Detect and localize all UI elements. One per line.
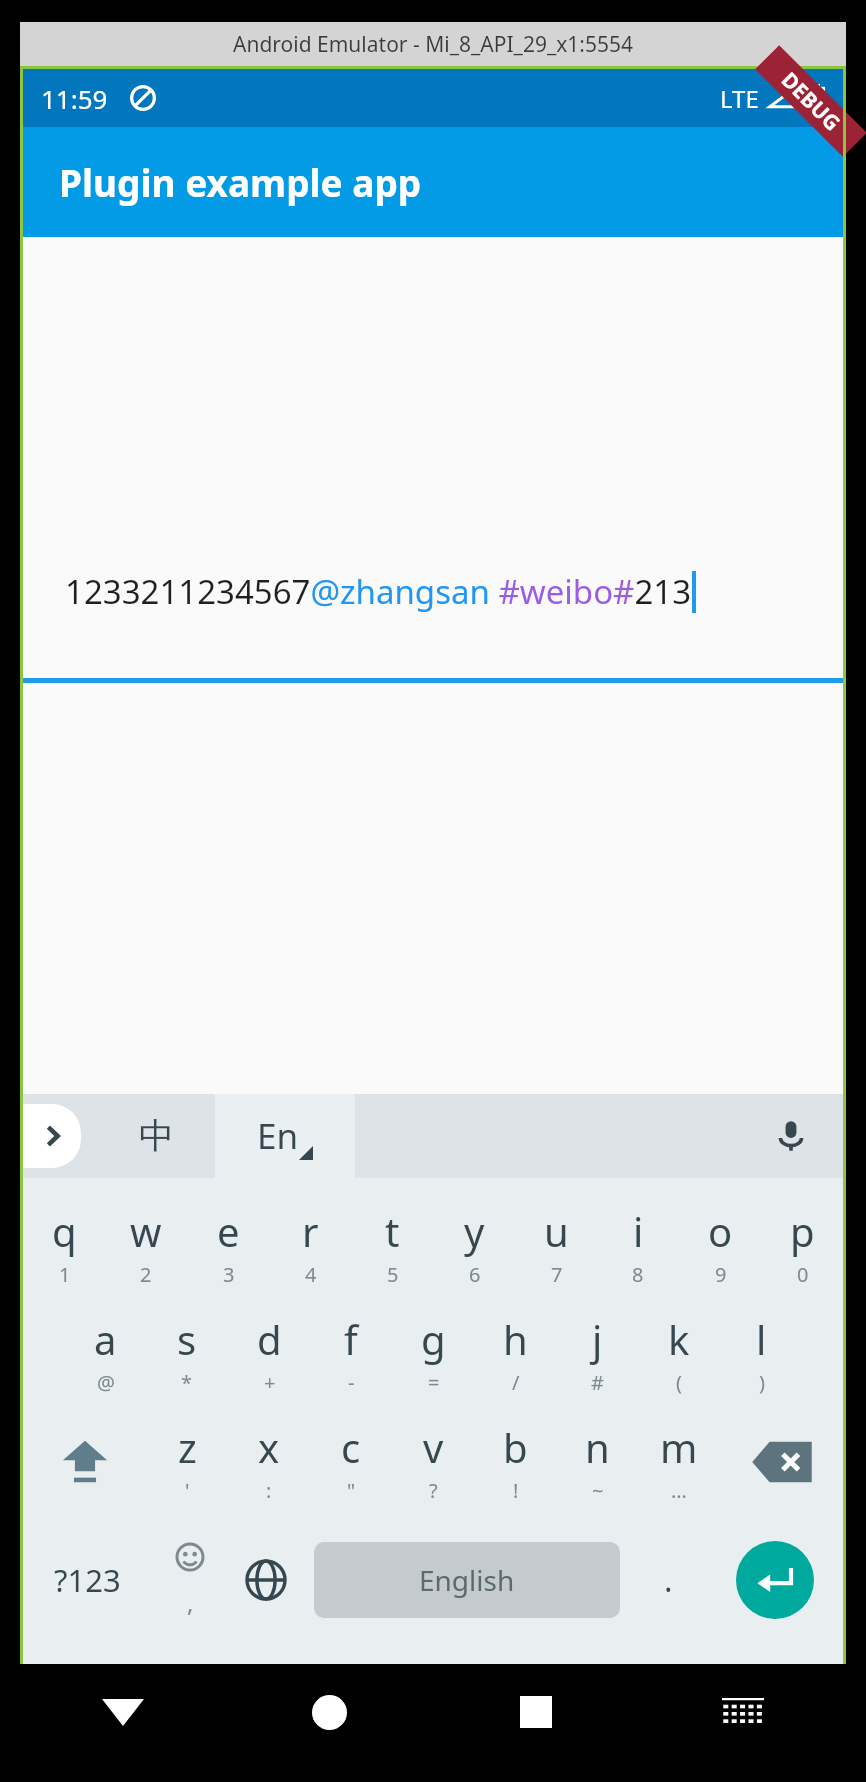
staticText: t — [385, 1204, 400, 1258]
button[interactable]: Recent apps — [432, 1664, 639, 1760]
staticText: … — [671, 1477, 687, 1504]
staticText: c — [341, 1420, 361, 1474]
staticText: o — [708, 1204, 733, 1258]
staticText: k — [668, 1312, 690, 1366]
button[interactable]: Home — [226, 1664, 432, 1760]
button[interactable]: o — [679, 1192, 761, 1300]
staticText: p — [790, 1204, 815, 1258]
staticText: 中 — [139, 1114, 174, 1158]
button[interactable]: Voice input — [739, 1094, 843, 1178]
staticText: 0 — [797, 1261, 809, 1288]
staticText: ?123 — [54, 1559, 121, 1601]
staticText: s — [177, 1312, 197, 1366]
staticText: n — [585, 1420, 610, 1474]
button[interactable]: Backspace — [720, 1408, 843, 1516]
button[interactable]: m — [638, 1408, 720, 1516]
staticText: e — [217, 1204, 240, 1258]
staticText: w — [130, 1204, 162, 1258]
button[interactable]: Enter — [706, 1516, 843, 1644]
button[interactable]: l — [720, 1300, 802, 1408]
staticText: ~ — [592, 1477, 604, 1504]
staticText: ) — [759, 1369, 765, 1396]
button[interactable]: Expand toolbar — [23, 1094, 97, 1178]
staticText: h — [503, 1312, 528, 1366]
staticText: = — [428, 1369, 440, 1396]
staticText: 2 — [140, 1261, 152, 1288]
staticText: 6 — [469, 1261, 481, 1288]
staticText: d — [257, 1312, 282, 1366]
button[interactable]: 1233211234567@zhangsan #weibo#213 — [65, 569, 843, 614]
button[interactable]: y — [433, 1192, 515, 1300]
button[interactable]: x — [228, 1408, 310, 1516]
button[interactable]: a — [64, 1300, 146, 1408]
button[interactable]: Change language — [228, 1516, 304, 1644]
staticText: 1233211234567@zhangsan #weibo#213 — [65, 569, 692, 614]
staticText: Plugin example app — [59, 157, 422, 207]
staticText: ( — [676, 1369, 682, 1396]
staticText: DEBUG — [775, 66, 847, 138]
button[interactable]: v — [392, 1408, 474, 1516]
staticText: / — [512, 1369, 520, 1396]
staticText: @ — [97, 1369, 115, 1396]
staticText: 8 — [632, 1261, 644, 1288]
staticText: , — [187, 1586, 194, 1619]
button[interactable]: En — [215, 1094, 355, 1178]
staticText: 7 — [551, 1261, 563, 1288]
staticText: : — [266, 1477, 272, 1504]
staticText: Android Emulator - Mi_8_API_29_x1:5554 — [233, 30, 634, 59]
staticText: q — [52, 1204, 77, 1258]
staticText: + — [264, 1369, 276, 1396]
staticText: l — [756, 1312, 767, 1366]
staticText: u — [544, 1204, 569, 1258]
staticText: ? — [429, 1477, 438, 1504]
button[interactable]: c — [310, 1408, 392, 1516]
staticText: 11:59 — [41, 81, 108, 116]
button[interactable]: u — [515, 1192, 597, 1300]
button[interactable]: Emoji — [152, 1516, 228, 1644]
staticText: 3 — [223, 1261, 235, 1288]
button[interactable]: k — [638, 1300, 720, 1408]
button[interactable]: f — [310, 1300, 392, 1408]
button[interactable]: h — [474, 1300, 556, 1408]
staticText: 4 — [305, 1261, 317, 1288]
button[interactable]: z — [146, 1408, 228, 1516]
button[interactable]: w — [105, 1192, 187, 1300]
button[interactable]: Chinese input — [97, 1094, 215, 1178]
staticText: En — [257, 1112, 299, 1160]
staticText: LTE — [720, 82, 759, 115]
button[interactable]: i — [597, 1192, 679, 1300]
button[interactable]: t — [351, 1192, 433, 1300]
staticText: English — [419, 1561, 515, 1599]
staticText: b — [503, 1420, 528, 1474]
button[interactable]: b — [474, 1408, 556, 1516]
button[interactable]: d — [228, 1300, 310, 1408]
staticText: ! — [513, 1477, 519, 1504]
button[interactable]: s — [146, 1300, 228, 1408]
button[interactable]: j — [556, 1300, 638, 1408]
button[interactable]: . — [630, 1516, 706, 1644]
button[interactable]: g — [392, 1300, 474, 1408]
staticText: . — [664, 1558, 673, 1602]
staticText: a — [94, 1312, 117, 1366]
staticText: y — [464, 1204, 485, 1258]
button[interactable]: r — [269, 1192, 351, 1300]
button[interactable]: Shift — [23, 1408, 146, 1516]
staticText: j — [592, 1312, 603, 1366]
button[interactable]: Back — [20, 1664, 226, 1760]
button[interactable]: n — [556, 1408, 638, 1516]
button[interactable]: e — [187, 1192, 269, 1300]
button[interactable]: p — [761, 1192, 843, 1300]
staticText: m — [660, 1420, 698, 1474]
button[interactable]: ?123 — [23, 1516, 152, 1644]
staticText: 9 — [715, 1261, 727, 1288]
staticText: i — [633, 1204, 644, 1258]
staticText: x — [258, 1420, 280, 1474]
button[interactable]: English — [314, 1542, 620, 1618]
staticText: * — [181, 1369, 193, 1396]
staticText: z — [178, 1420, 197, 1474]
staticText: v — [423, 1420, 444, 1474]
button[interactable]: Hide keyboard — [639, 1664, 846, 1760]
staticText: " — [347, 1477, 356, 1504]
staticText: r — [302, 1204, 319, 1258]
button[interactable]: q — [23, 1192, 105, 1300]
